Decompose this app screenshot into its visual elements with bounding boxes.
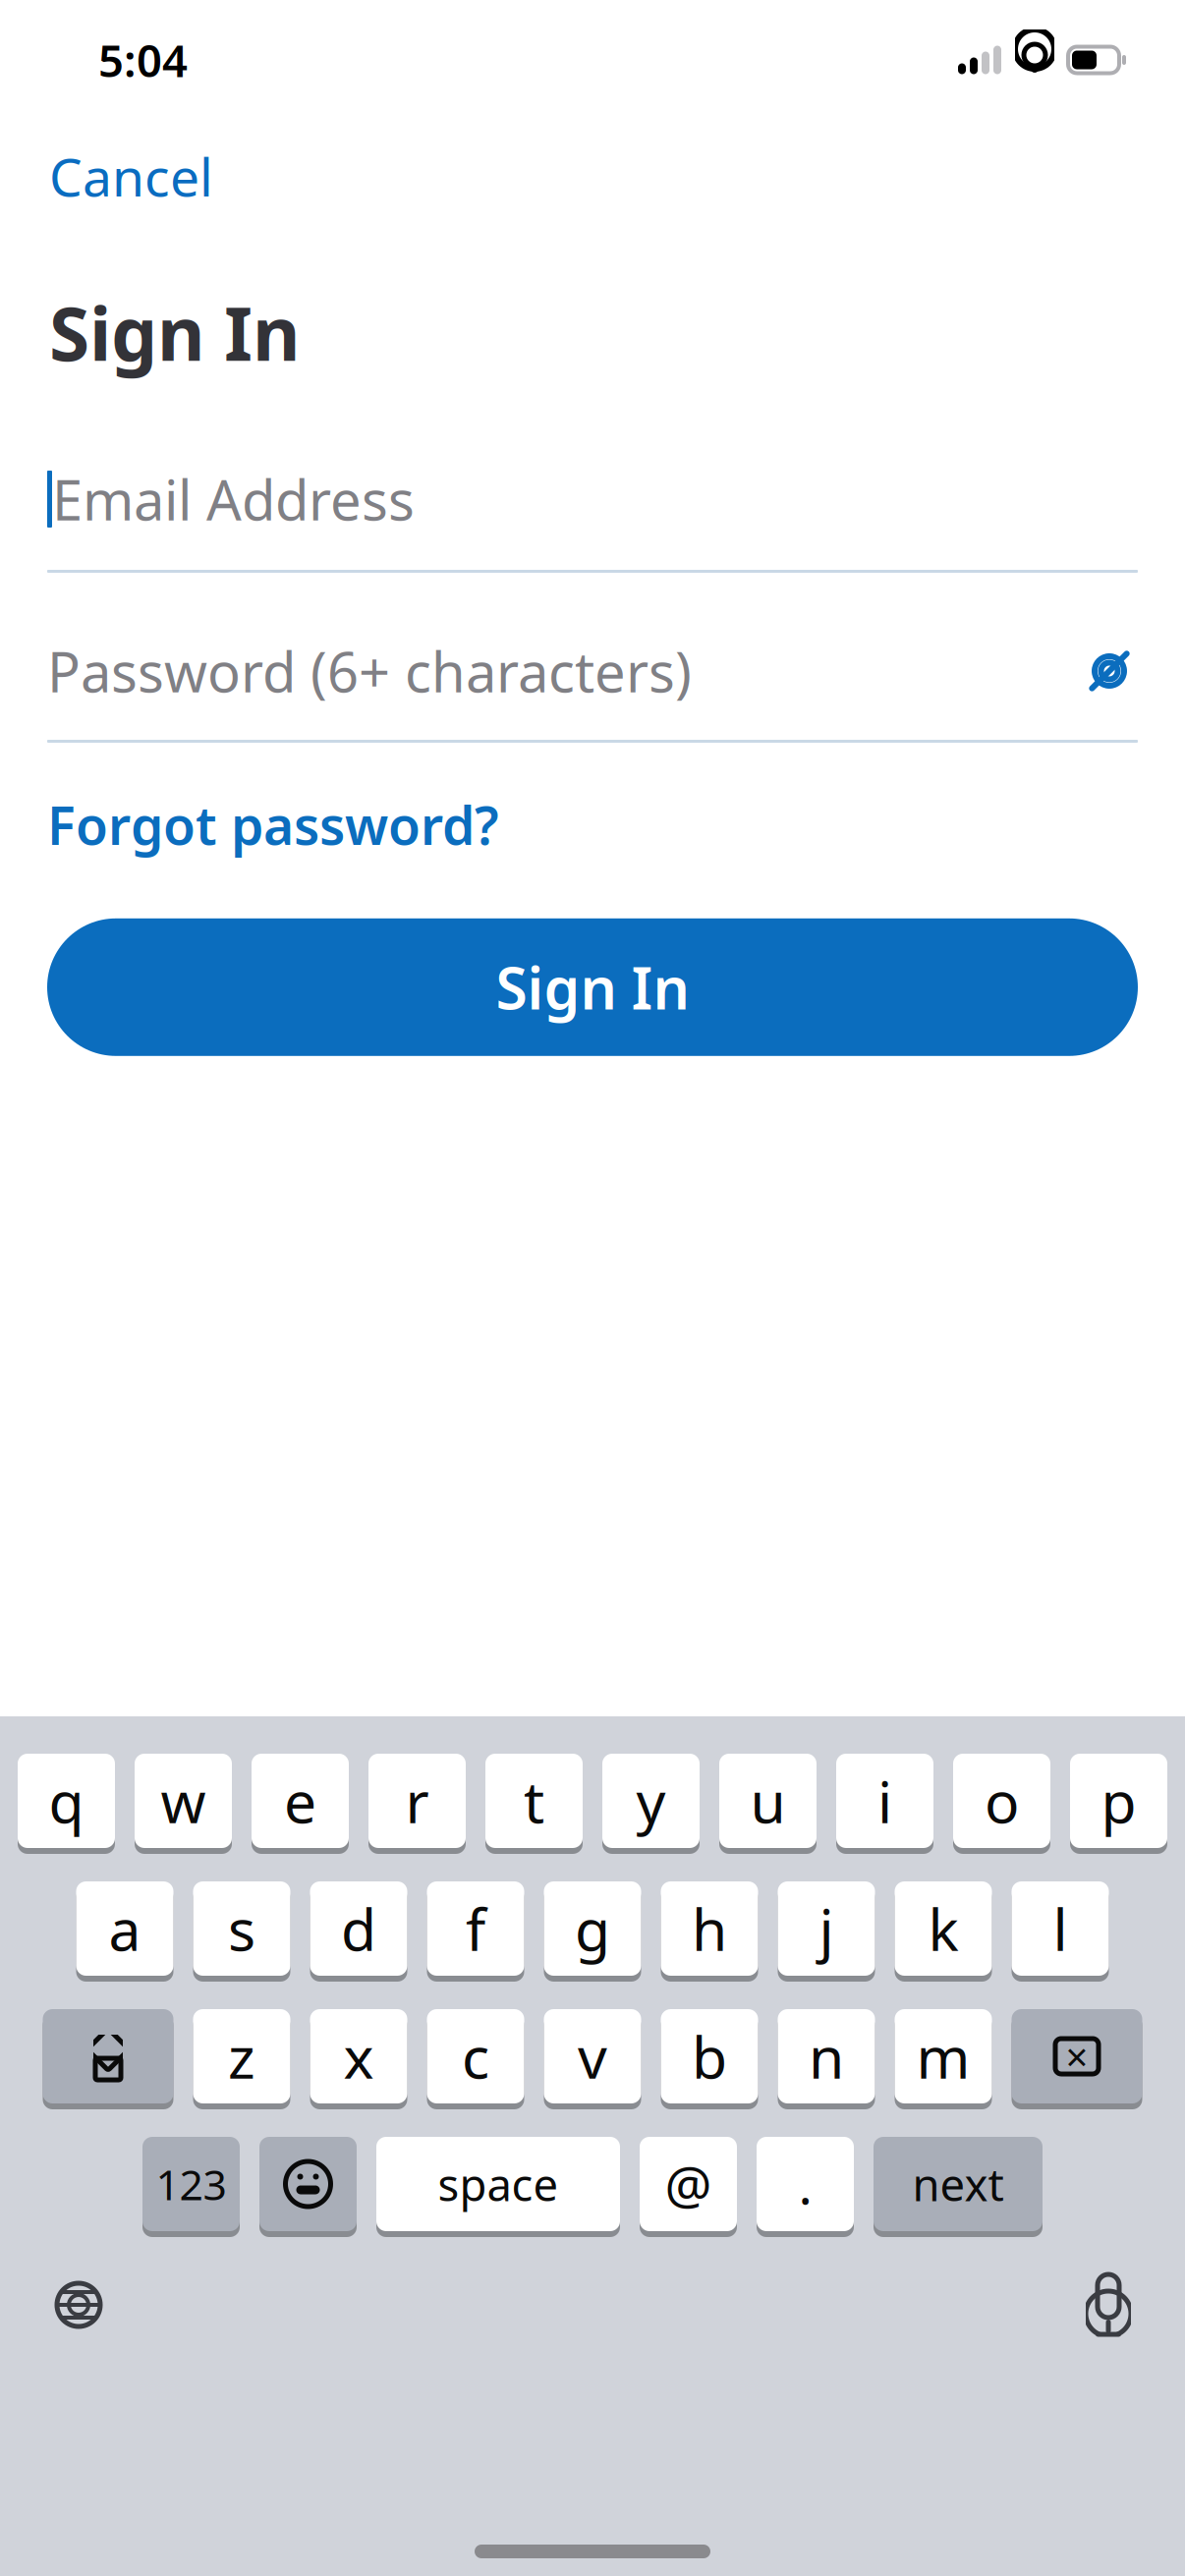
- staticText: Sign In: [496, 949, 689, 1025]
- staticText: w: [161, 1763, 206, 1839]
- staticText: n: [809, 2018, 844, 2094]
- staticText: o: [985, 1763, 1019, 1839]
- button[interactable]: k: [895, 1881, 992, 1982]
- staticText: c: [462, 2018, 489, 2094]
- button[interactable]: s: [193, 1881, 290, 1982]
- staticText: @: [665, 2149, 712, 2219]
- staticText: ×: [1066, 2030, 1088, 2082]
- button[interactable]: d: [310, 1881, 407, 1982]
- button[interactable]: p: [1070, 1754, 1167, 1854]
- staticText: 123: [156, 2156, 226, 2212]
- staticText: f: [466, 1890, 485, 1967]
- staticText: z: [228, 2018, 255, 2094]
- staticText: e: [284, 1763, 316, 1839]
- button[interactable]: e: [252, 1754, 349, 1854]
- button[interactable]: x: [310, 2009, 407, 2109]
- staticText: q: [49, 1763, 84, 1839]
- button[interactable]: Cancel: [0, 124, 262, 229]
- staticText: Email Address: [52, 463, 415, 536]
- staticText: r: [405, 1763, 429, 1839]
- button[interactable]: l: [1012, 1881, 1109, 1982]
- button[interactable]: o: [953, 1754, 1050, 1854]
- button[interactable]: .: [757, 2137, 854, 2237]
- button[interactable]: Next keyboard: [51, 2272, 106, 2337]
- button[interactable]: Delete: [1012, 2009, 1142, 2109]
- button[interactable]: Forgot password?: [47, 782, 499, 867]
- button[interactable]: w: [135, 1754, 232, 1854]
- button[interactable]: j: [778, 1881, 875, 1982]
- button[interactable]: c: [427, 2009, 524, 2109]
- button[interactable]: q: [18, 1754, 115, 1854]
- button[interactable]: r: [368, 1754, 466, 1854]
- button[interactable]: z: [193, 2009, 290, 2109]
- staticText: m: [916, 2018, 970, 2094]
- staticText: x: [343, 2018, 374, 2094]
- staticText: t: [524, 1763, 544, 1839]
- staticText: Cancel: [49, 141, 213, 211]
- button[interactable]: i: [836, 1754, 933, 1854]
- button[interactable]: v: [544, 2009, 641, 2109]
- staticText: s: [228, 1890, 255, 1967]
- staticText: space: [438, 2154, 559, 2214]
- button[interactable]: @: [640, 2137, 737, 2237]
- staticText: l: [1053, 1890, 1068, 1967]
- button[interactable]: g: [544, 1881, 641, 1982]
- button[interactable]: Dictate: [1083, 2270, 1134, 2339]
- staticText: a: [109, 1890, 141, 1967]
- button[interactable]: t: [485, 1754, 583, 1854]
- staticText: u: [750, 1763, 786, 1839]
- staticText: p: [1101, 1763, 1136, 1839]
- staticText: 5:04: [98, 30, 188, 90]
- staticText: Sign In: [49, 284, 301, 381]
- button[interactable]: space: [376, 2137, 620, 2237]
- button[interactable]: Show password: [1081, 643, 1138, 700]
- staticText: next: [912, 2154, 1004, 2214]
- button[interactable]: a: [76, 1881, 173, 1982]
- staticText: h: [692, 1890, 727, 1967]
- button[interactable]: h: [661, 1881, 758, 1982]
- staticText: .: [798, 2149, 812, 2219]
- button[interactable]: u: [719, 1754, 817, 1854]
- button[interactable]: 123: [142, 2137, 240, 2237]
- staticText: Password (6+ characters): [47, 634, 692, 708]
- button[interactable]: Sign In: [47, 918, 1138, 1056]
- button[interactable]: Shift: [43, 2009, 173, 2109]
- staticText: g: [575, 1890, 610, 1967]
- staticText: k: [928, 1890, 959, 1967]
- button[interactable]: b: [661, 2009, 758, 2109]
- staticText: d: [341, 1890, 376, 1967]
- button[interactable]: m: [895, 2009, 992, 2109]
- staticText: y: [636, 1763, 666, 1839]
- button[interactable]: y: [602, 1754, 700, 1854]
- staticText: v: [578, 2018, 607, 2094]
- staticText: i: [877, 1763, 892, 1839]
- staticText: b: [692, 2018, 727, 2094]
- staticText: j: [819, 1890, 834, 1967]
- button[interactable]: f: [427, 1881, 524, 1982]
- staticText: Forgot password?: [47, 790, 499, 859]
- button[interactable]: n: [778, 2009, 875, 2109]
- button[interactable]: Emoji: [259, 2137, 357, 2237]
- button[interactable]: next: [874, 2137, 1043, 2237]
